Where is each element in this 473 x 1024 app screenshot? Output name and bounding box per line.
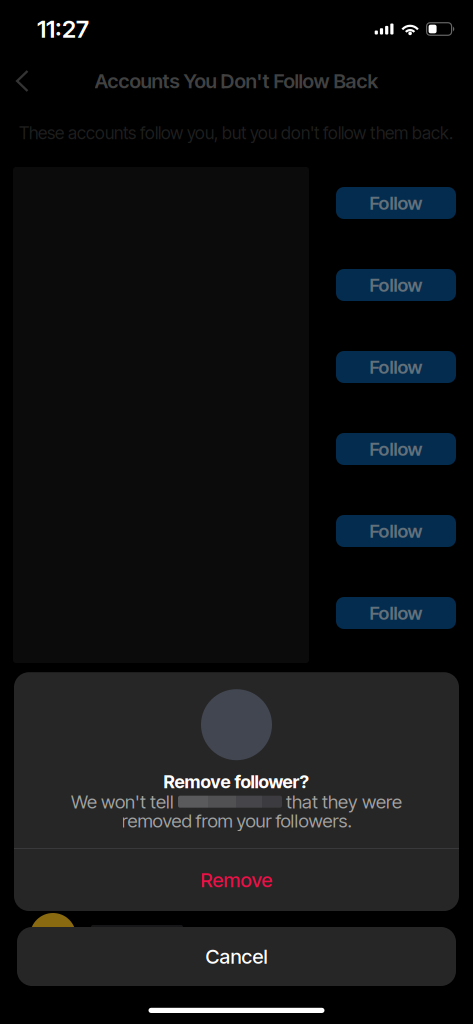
button[interactable]: Follow xyxy=(336,515,456,547)
staticText: Accounts You Don't Follow Back xyxy=(94,69,378,93)
staticText: Follow xyxy=(369,274,422,296)
button[interactable]: Follow xyxy=(336,351,456,383)
button[interactable]: Follow xyxy=(336,597,456,629)
staticText: Follow xyxy=(369,192,422,214)
button[interactable]: Back xyxy=(0,59,44,103)
staticText: Follow xyxy=(369,356,422,378)
staticText: We won't tell xyxy=(71,790,178,813)
button[interactable]: Cancel xyxy=(17,927,456,986)
button[interactable]: Follow xyxy=(336,187,456,219)
staticText: Remove xyxy=(200,868,272,892)
staticText: Follow xyxy=(369,438,422,460)
button[interactable]: Remove xyxy=(14,849,459,911)
staticText: 11:27 xyxy=(37,14,89,43)
staticText: that they were xyxy=(282,790,402,813)
staticText: Follow xyxy=(369,602,422,624)
staticText: removed from your followers. xyxy=(121,809,351,832)
button[interactable]: Follow xyxy=(336,269,456,301)
staticText: These accounts follow you, but you don't… xyxy=(19,122,453,143)
staticText: Remove follower? xyxy=(163,771,309,793)
button[interactable]: Follow xyxy=(336,433,456,465)
staticText: Follow xyxy=(369,520,422,542)
staticText: Cancel xyxy=(205,944,267,969)
